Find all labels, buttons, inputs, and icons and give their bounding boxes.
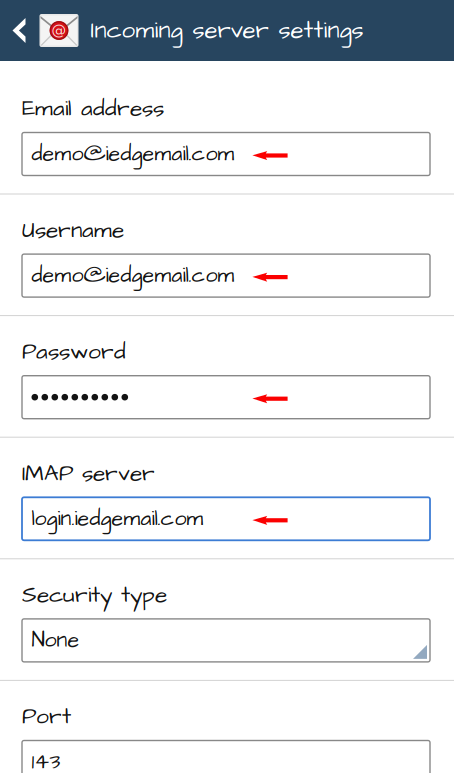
staticText: @ [51,22,66,39]
staticText: Incoming server settings [90,14,363,47]
staticText: login.iedgemail.com [31,504,203,534]
staticText: Email address [22,93,164,124]
staticText: Security type [22,579,167,611]
staticText: 143 [31,747,60,773]
button[interactable]: 143 [22,740,430,773]
staticText: Password [22,336,126,368]
button[interactable] [22,376,430,419]
staticText: None [31,626,79,655]
staticText: demo@iedgemail.com [31,139,234,169]
button[interactable]: None [22,619,430,662]
button[interactable]: demo@iedgemail.com [22,254,430,297]
staticText: demo@iedgemail.com [31,261,234,290]
button[interactable]: login.iedgemail.com [22,497,430,540]
staticText: Username [22,215,124,246]
button[interactable]: demo@iedgemail.com [22,132,430,175]
staticText: IMAP server [22,458,155,489]
button[interactable]: Back [0,0,39,61]
staticText: Port [22,701,71,732]
